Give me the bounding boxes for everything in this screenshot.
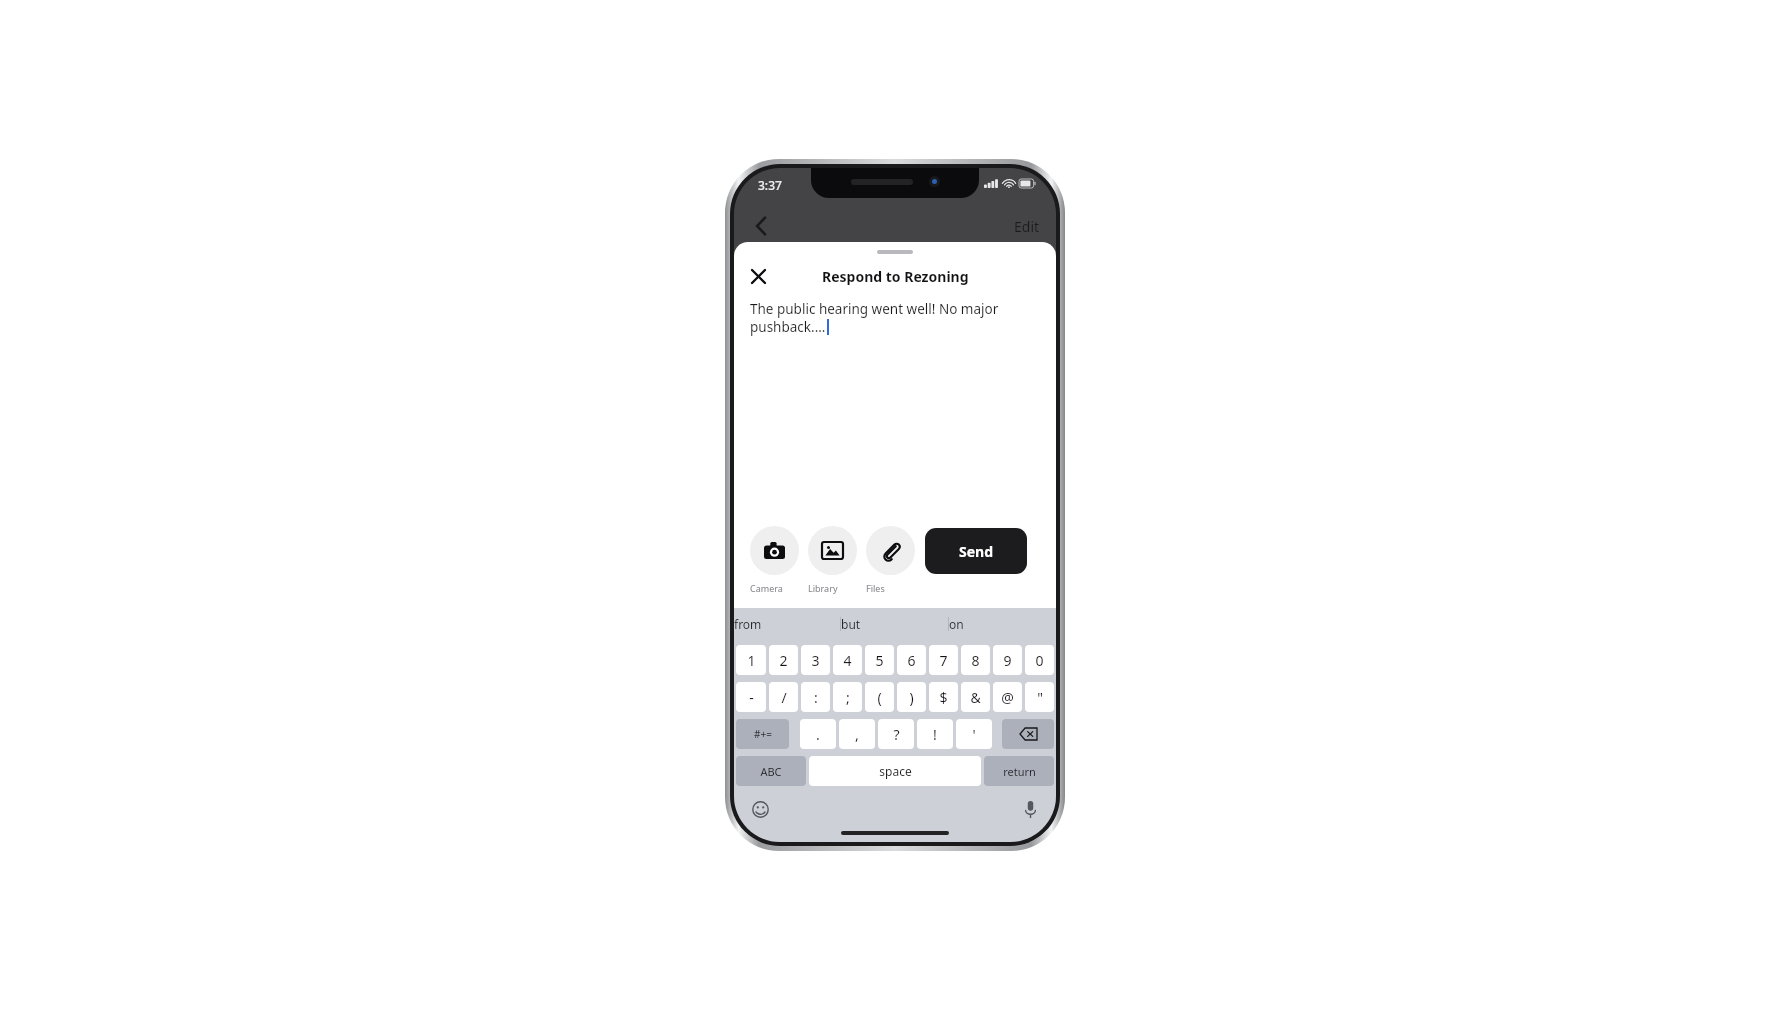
button[interactable]: - [736,682,766,712]
button[interactable]: 0 [1025,645,1054,675]
staticText: Library [808,582,857,594]
button[interactable]: Edit [1010,213,1044,240]
staticText: 8 [971,651,980,670]
button[interactable]: 2 [769,645,798,675]
staticText: : [814,688,818,707]
button[interactable]: 9 [993,645,1022,675]
button[interactable]: 8 [961,645,990,675]
button[interactable]: ! [917,719,953,749]
button[interactable]: 1 [736,645,766,675]
staticText: 1 [747,651,756,670]
button[interactable]: Camera [750,526,799,575]
button[interactable]: from [734,608,840,640]
staticText: ; [846,688,850,707]
button[interactable]: ; [833,682,862,712]
staticText: on [949,616,1056,632]
staticText: space [879,763,912,779]
staticText: @ [1001,688,1014,707]
staticText: " [1037,688,1043,707]
button[interactable]: Close [744,263,772,289]
button[interactable]: , [839,719,875,749]
button[interactable]: ( [865,682,894,712]
staticText: - [749,688,754,707]
staticText: ? [893,725,900,744]
staticText: / [781,688,787,707]
staticText: ' [972,725,976,744]
staticText: Edit [1014,217,1040,236]
staticText: 4 [843,651,852,670]
staticText: Respond to Rezoning [822,267,969,286]
button[interactable]: space [809,756,981,786]
button[interactable]: Dictation [1018,797,1042,821]
button[interactable]: & [961,682,990,712]
staticText: Camera [750,582,799,594]
button[interactable]: Send [925,528,1027,574]
staticText: Files [866,582,915,594]
button[interactable]: 3 [801,645,830,675]
button[interactable]: 5 [865,645,894,675]
button[interactable]: $ [929,682,958,712]
staticText: ) [909,688,914,707]
staticText: 6 [907,651,916,670]
button[interactable]: . [800,719,836,749]
button[interactable]: / [769,682,798,712]
staticText: 0 [1035,651,1044,670]
staticText: 2 [779,651,788,670]
button[interactable]: Emoji [748,797,772,821]
button[interactable]: ) [897,682,926,712]
staticText: return [1003,764,1036,779]
button[interactable]: ABC [736,756,806,786]
button[interactable]: ? [878,719,914,749]
staticText: ABC [760,764,782,779]
staticText: The public hearing went well! No major [750,300,999,318]
staticText: from [734,616,840,632]
button[interactable]: ' [956,719,992,749]
staticText: . [816,725,820,744]
staticText: 3 [811,651,820,670]
staticText: ! [933,725,937,744]
button[interactable]: but [841,608,948,640]
button[interactable]: 4 [833,645,862,675]
button[interactable]: on [949,608,1056,640]
button[interactable]: Backspace [1002,719,1054,749]
staticText: ( [877,688,882,707]
staticText: #+= [754,727,772,741]
button[interactable]: 7 [929,645,958,675]
button[interactable]: Files [866,526,915,575]
button[interactable]: " [1025,682,1054,712]
staticText: 5 [875,651,884,670]
staticText: 3:37 [758,177,782,193]
staticText: & [970,688,981,707]
button[interactable]: 6 [897,645,926,675]
staticText: but [841,616,948,632]
button[interactable]: @ [993,682,1022,712]
button[interactable]: : [801,682,830,712]
staticText: pushback.... [750,318,826,336]
button[interactable]: Library [808,526,857,575]
staticText: $ [939,688,948,707]
button[interactable]: #+= [736,719,789,749]
staticText: 7 [939,651,948,670]
staticText: , [855,725,859,744]
button[interactable]: return [984,756,1054,786]
staticText: Send [959,542,994,561]
button[interactable]: Back [744,210,778,242]
staticText: 9 [1003,651,1012,670]
